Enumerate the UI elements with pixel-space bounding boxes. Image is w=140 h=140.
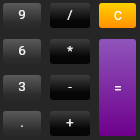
staticText: . [20, 114, 24, 130]
button[interactable]: six [3, 39, 41, 64]
staticText: 9 [18, 6, 26, 22]
button[interactable]: subtract [50, 75, 90, 100]
staticText: 3 [18, 78, 26, 94]
button[interactable]: multiply [50, 39, 90, 64]
button[interactable]: clear [99, 3, 136, 28]
staticText: * [67, 43, 73, 58]
button[interactable]: divide [50, 3, 90, 28]
button[interactable]: add [50, 111, 90, 136]
button[interactable]: three [3, 75, 41, 100]
staticText: + [66, 115, 74, 130]
button[interactable]: equals [99, 39, 136, 136]
staticText: 6 [18, 42, 26, 58]
button[interactable]: nine [3, 3, 41, 28]
staticText: / [67, 7, 73, 22]
staticText: C [114, 9, 122, 23]
staticText: = [114, 80, 122, 96]
staticText: - [68, 79, 72, 94]
button[interactable]: decimal point [3, 111, 41, 136]
